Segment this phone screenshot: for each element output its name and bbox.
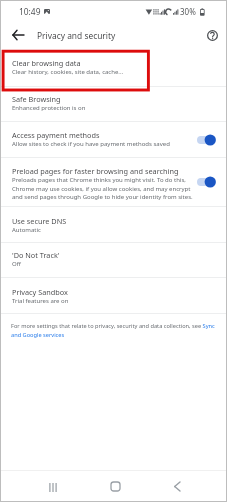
button[interactable]: Home <box>103 474 127 498</box>
staticText: Off <box>12 260 21 268</box>
button[interactable]: Safe Browsing <box>1 87 226 121</box>
button[interactable]: Back <box>165 474 189 498</box>
staticText: Access payment methods <box>12 130 100 140</box>
staticText: Clear browsing data <box>12 58 81 68</box>
staticText: Privacy Sandbox <box>12 287 68 297</box>
staticText: Clear history, cookies, site data, cache… <box>12 68 124 76</box>
staticText: Preload pages for faster browsing and se… <box>12 166 179 176</box>
staticText: Safe Browsing <box>12 94 61 104</box>
button[interactable]: 'Do Not Track' <box>1 243 226 277</box>
button[interactable]: Help <box>201 24 223 46</box>
staticText: Use secure DNS <box>12 216 67 226</box>
button[interactable]: Privacy Sandbox <box>1 278 226 313</box>
button[interactable]: Access payment methods <box>1 122 226 157</box>
staticText: Allow sites to check if you have payment… <box>12 140 170 148</box>
button[interactable]: Recent apps <box>41 474 65 498</box>
button[interactable]: Use secure DNS <box>1 207 226 242</box>
staticText: Preloads pages that Chrome thinks you mi… <box>12 176 198 200</box>
staticText: Trial features are on <box>12 297 69 305</box>
button[interactable]: Preload pages for faster browsing and se… <box>1 158 226 206</box>
staticText: 10:49 <box>19 6 41 17</box>
button[interactable]: Back <box>7 24 29 46</box>
staticText: Automatic <box>12 226 41 234</box>
staticText: For more settings that relate to privacy… <box>11 322 222 338</box>
staticText: 'Do Not Track' <box>12 250 60 260</box>
staticText: Privacy and security <box>37 30 116 41</box>
button[interactable]: Clear browsing data <box>1 49 226 86</box>
staticText: Enhanced protection is on <box>12 104 86 112</box>
staticText: 30% <box>180 6 196 17</box>
